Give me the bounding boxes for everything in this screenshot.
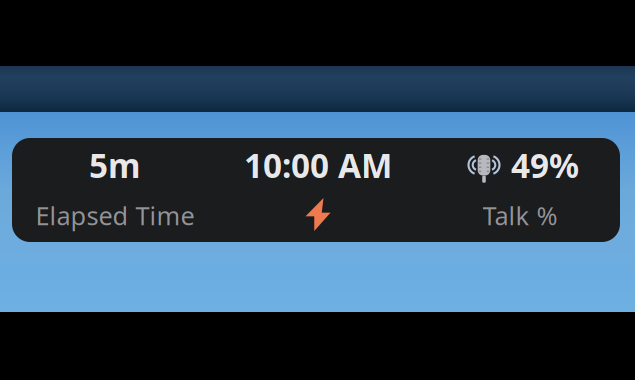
staticText: 10:00 AM (244, 143, 392, 187)
staticText: 49% (511, 143, 579, 187)
staticText: 5m (89, 143, 141, 187)
staticText: Talk % (482, 199, 557, 232)
staticText: Elapsed Time (35, 199, 194, 232)
